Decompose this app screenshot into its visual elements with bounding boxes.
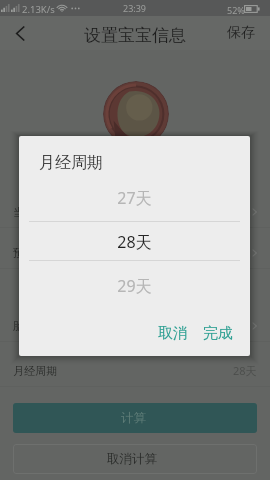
staticText: 52% [227,4,245,16]
staticText: 23:39 [123,2,147,14]
staticText: 胎儿性别 [13,319,57,333]
staticText: 27天 [19,187,250,209]
staticText: 2.13K/s [22,3,55,16]
staticText: 取消 [158,324,188,343]
button[interactable]: 保存 [227,16,255,50]
staticText: 设置宝宝信息 [84,25,186,46]
staticText: 保存 [227,24,255,42]
staticText: 当前阶段 [13,205,57,219]
button[interactable]: 预产期 [13,237,257,268]
staticText: 预产期 [13,246,46,260]
button[interactable]: 计算 [13,403,257,433]
button[interactable]: 月经周期 [13,355,257,386]
button[interactable]: 取消 [158,324,188,343]
staticText: 完成 [203,324,233,343]
staticText: 月经周期 [39,153,103,173]
button[interactable]: 胎儿性别 [13,310,257,341]
staticText: 计算 [121,410,146,426]
button[interactable]: Back [0,16,40,50]
button[interactable]: 取消计算 [13,444,257,474]
button[interactable]: 当前阶段 [13,196,257,227]
staticText: 28天 [233,363,257,378]
staticText: 28天 [19,231,250,253]
staticText: 取消计算 [107,451,157,467]
staticText: 29天 [19,275,250,297]
staticText: 月经周期 [13,364,57,378]
button[interactable]: 完成 [203,324,233,343]
